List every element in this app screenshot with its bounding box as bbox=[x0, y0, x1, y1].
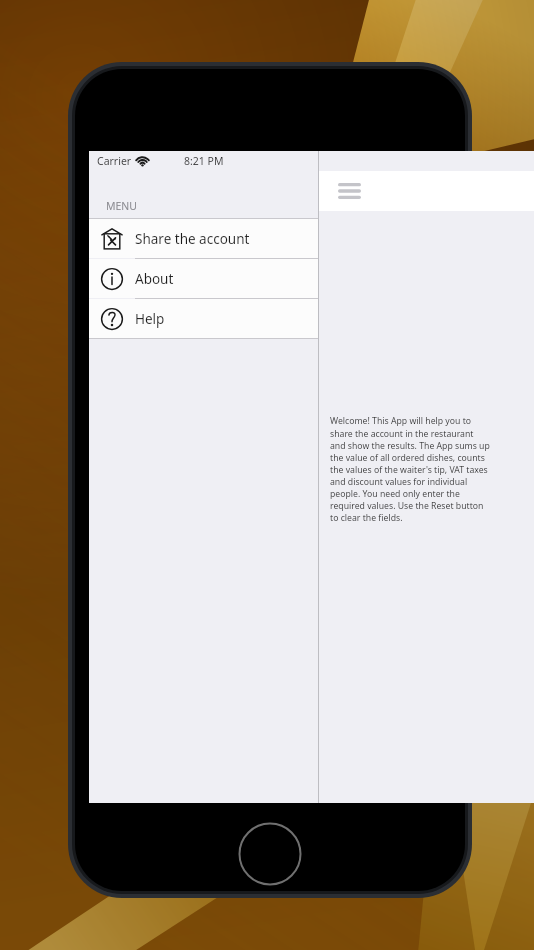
other: About bbox=[99, 266, 125, 292]
other: Restaurant bbox=[99, 226, 125, 252]
button[interactable]: Help bbox=[89, 299, 319, 338]
button[interactable]: About bbox=[89, 259, 319, 298]
staticText: 8:21 PM bbox=[184, 154, 224, 168]
staticText: MENU bbox=[106, 199, 138, 213]
other: Home bbox=[238, 822, 302, 886]
button[interactable]: Open menu bbox=[326, 171, 372, 211]
staticText: About bbox=[135, 270, 174, 288]
other: Help bbox=[99, 306, 125, 332]
staticText: Carrier bbox=[97, 154, 132, 168]
button[interactable]: Restaurant bbox=[89, 219, 319, 258]
staticText: Share the account bbox=[135, 230, 250, 248]
staticText: Help bbox=[135, 310, 165, 328]
staticText: Welcome! This App will help you to share… bbox=[330, 415, 490, 523]
